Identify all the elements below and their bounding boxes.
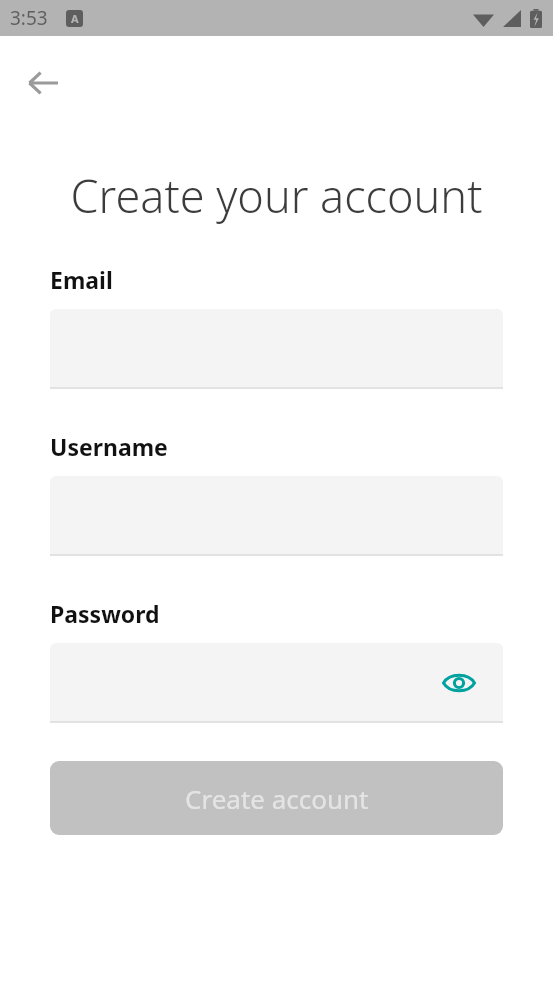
- staticText: Create your account: [0, 165, 553, 226]
- staticText: Create account: [185, 781, 369, 816]
- button[interactable]: Show password: [50, 643, 503, 723]
- staticText: A: [71, 11, 79, 26]
- button[interactable]: Show password: [437, 661, 481, 705]
- staticText: Email: [50, 264, 113, 295]
- staticText: Username: [50, 431, 168, 462]
- staticText: 3:53: [10, 5, 48, 31]
- staticText: Password: [50, 598, 160, 629]
- button[interactable]: Back: [16, 56, 70, 110]
- button[interactable]: Create account: [50, 761, 503, 835]
